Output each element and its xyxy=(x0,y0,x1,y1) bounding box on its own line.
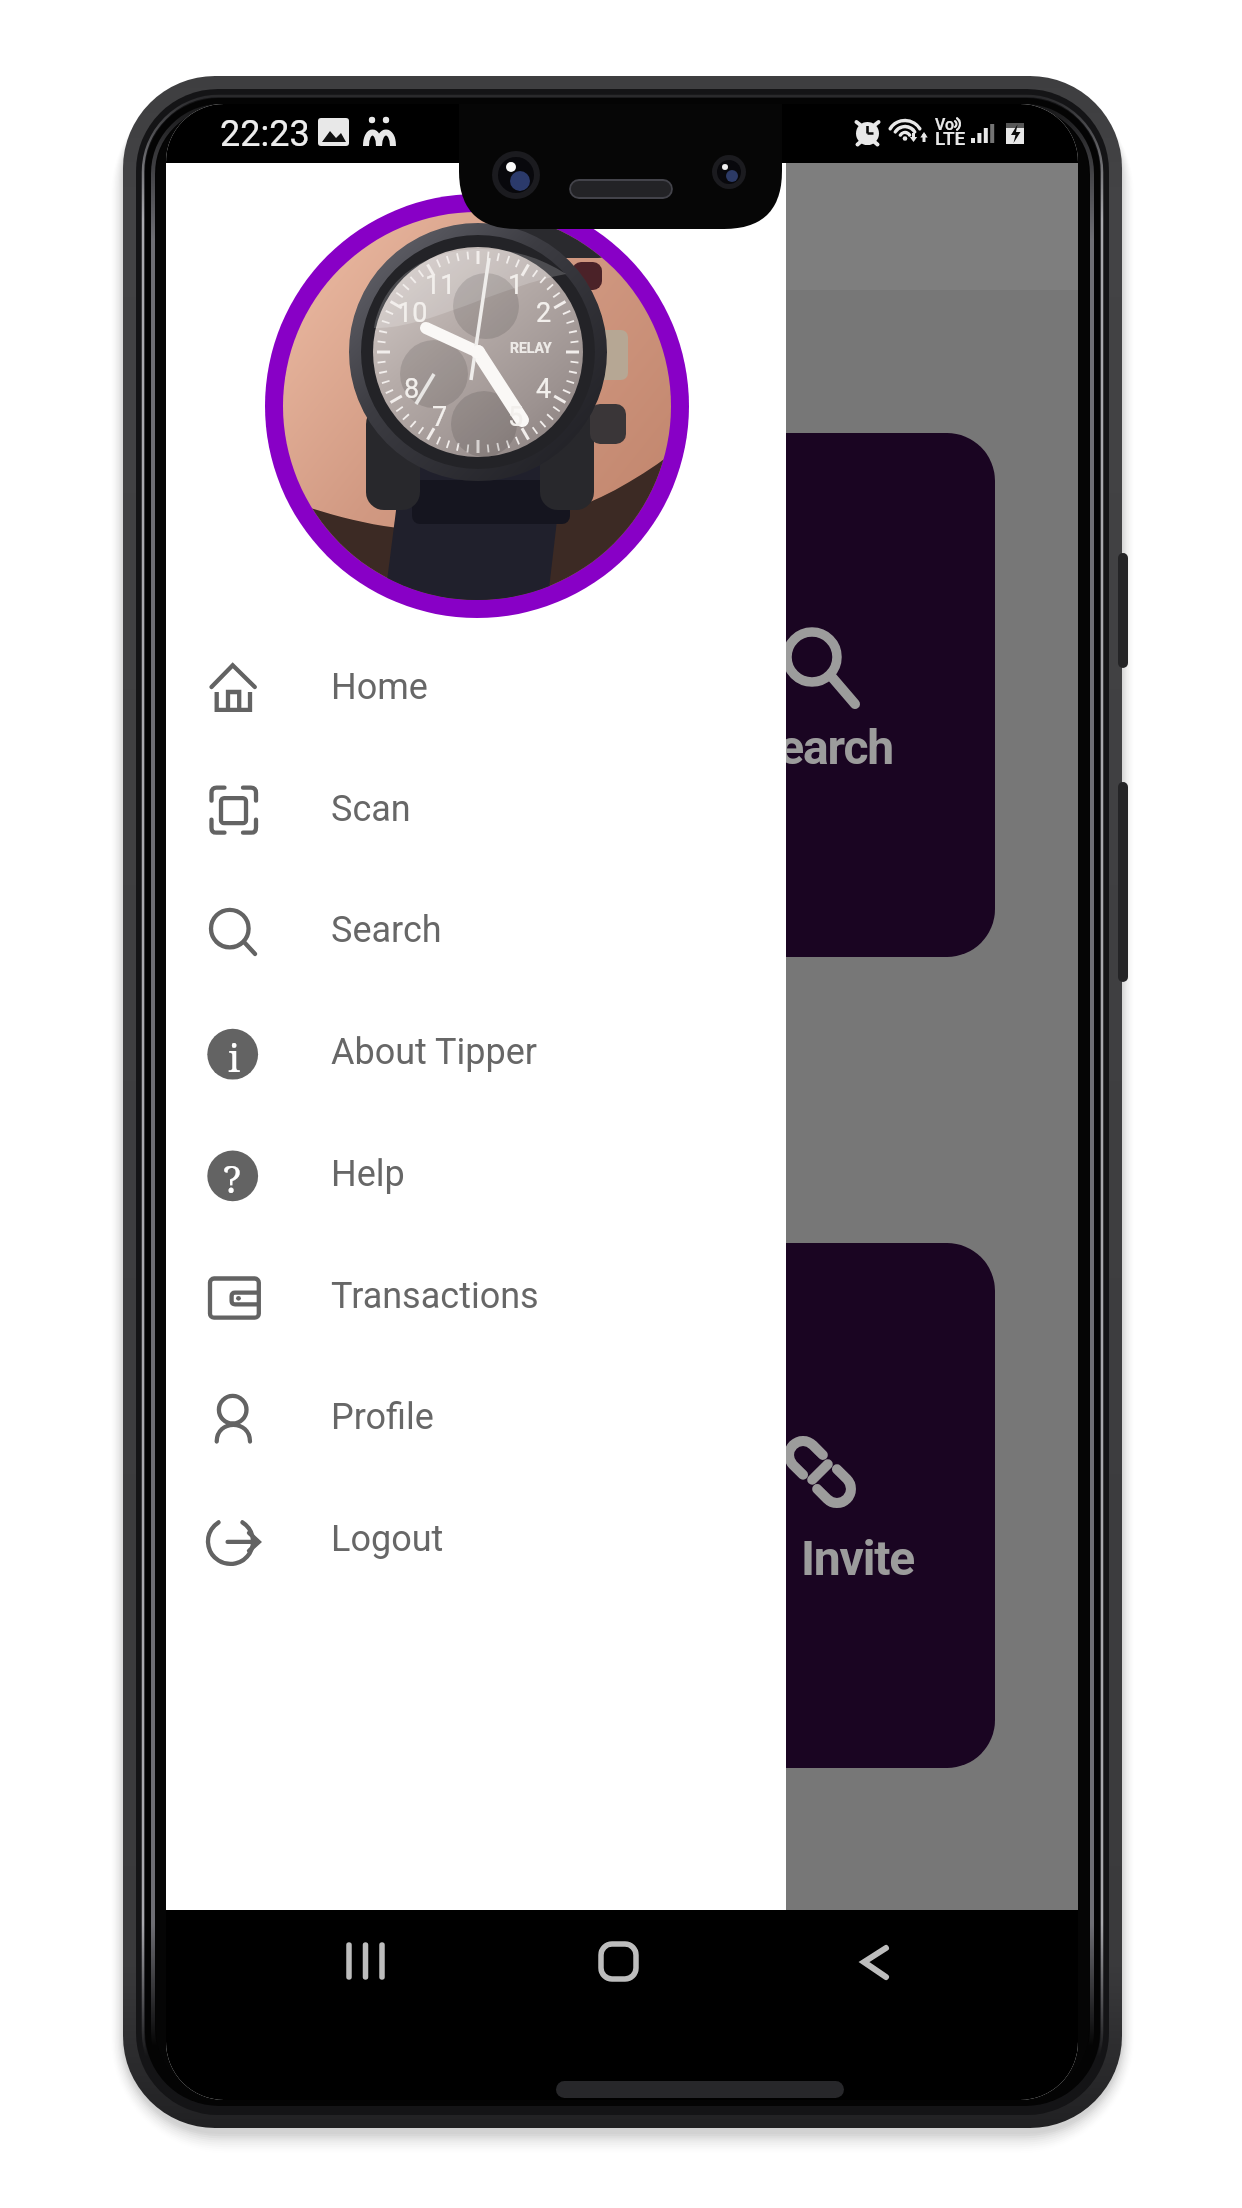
staticText: LTE xyxy=(935,127,966,149)
other: Search xyxy=(210,901,274,965)
staticText: Logout xyxy=(331,1518,444,1560)
button[interactable]: Profile photo xyxy=(265,194,689,618)
staticText: Search xyxy=(331,909,442,951)
staticText: Search xyxy=(786,719,893,775)
staticText: 2 xyxy=(536,297,552,329)
button[interactable]: Home xyxy=(592,1942,652,2002)
staticText: 8 xyxy=(404,373,420,405)
button[interactable]: Scan xyxy=(166,752,786,872)
button[interactable]: Home xyxy=(166,630,786,750)
staticText: Transactions xyxy=(331,1275,539,1317)
button[interactable]: Search xyxy=(166,873,786,993)
staticText: 5 xyxy=(508,401,524,433)
other: About Tipper xyxy=(210,1023,274,1087)
button[interactable]: Back xyxy=(856,1942,916,2002)
staticText: i xyxy=(228,1031,241,1083)
button[interactable]: About Tipper xyxy=(166,995,786,1115)
other: Home xyxy=(210,658,274,722)
other: Profile xyxy=(210,1388,274,1452)
staticText: Vo xyxy=(935,115,955,134)
staticText: Home xyxy=(331,666,428,708)
staticText: Profile xyxy=(331,1396,434,1438)
button[interactable]: Help xyxy=(166,1117,786,1237)
staticText: 1 xyxy=(508,269,524,301)
staticText: 4 xyxy=(536,373,552,405)
other: Logout xyxy=(210,1510,274,1574)
staticText: Help xyxy=(331,1153,405,1195)
staticText: RELAY xyxy=(510,340,552,356)
other: Transactions xyxy=(210,1267,274,1331)
staticText: About Tipper xyxy=(331,1031,538,1073)
staticText: ? xyxy=(223,1152,242,1204)
staticText: 10 xyxy=(397,297,428,329)
other: Scan xyxy=(210,780,274,844)
staticText: 7 xyxy=(432,401,448,433)
staticText: Invite xyxy=(801,1530,914,1586)
staticText: 11 xyxy=(425,269,456,301)
button[interactable]: Logout xyxy=(166,1482,786,1602)
button[interactable]: Recent apps xyxy=(350,1942,410,2002)
staticText: 22:23 xyxy=(220,113,310,155)
staticText: Scan xyxy=(331,788,411,830)
button[interactable]: Transactions xyxy=(166,1239,786,1359)
other: Help xyxy=(210,1145,274,1209)
button[interactable]: Profile xyxy=(166,1360,786,1480)
